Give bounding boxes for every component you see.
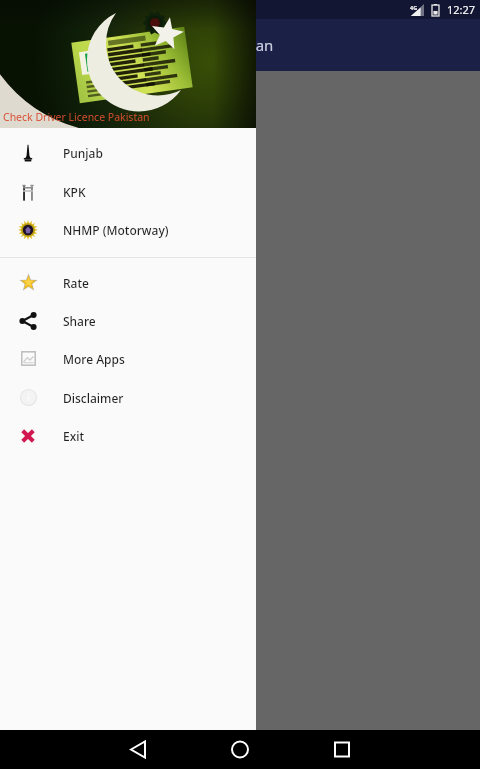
staticText: Check Driver Licence Pakistan <box>3 110 150 124</box>
button[interactable]: Punjab <box>0 133 256 172</box>
staticText: Exit <box>63 428 85 444</box>
button[interactable]: Share <box>0 301 256 340</box>
staticText: Share <box>63 313 96 329</box>
staticText: 4G <box>410 4 418 11</box>
button[interactable]: NHMP (Motorway) <box>0 210 256 249</box>
staticText: Rate <box>63 275 89 291</box>
staticText: KPK <box>63 184 86 200</box>
staticText: Disclaimer <box>63 390 124 406</box>
staticText: Check Driver Licence Pakistan <box>64 35 274 55</box>
button[interactable]: Disclaimer <box>0 378 256 417</box>
button[interactable]: More Apps <box>0 339 256 378</box>
staticText: NHMP (Motorway) <box>63 222 169 238</box>
staticText: 12:27 <box>447 2 476 17</box>
button[interactable]: KPK <box>0 172 256 211</box>
button[interactable]: Rate <box>0 263 256 302</box>
staticText: Punjab <box>63 145 103 161</box>
staticText: More Apps <box>63 351 125 367</box>
button[interactable]: Exit <box>0 416 256 455</box>
